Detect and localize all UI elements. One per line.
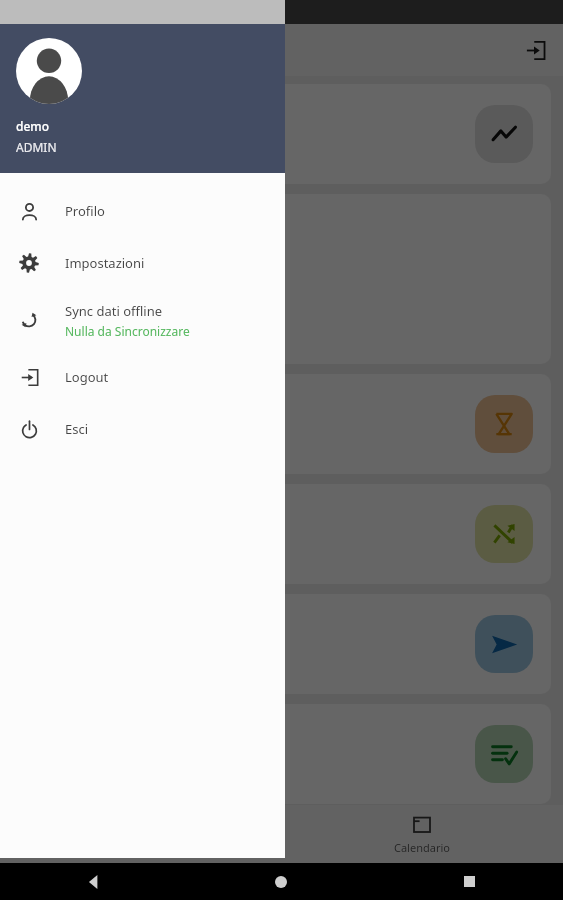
staticText: Esci: [65, 420, 89, 438]
button[interactable]: [12, 594, 551, 694]
button[interactable]: Profilo: [0, 185, 285, 237]
button[interactable]: Calendario: [281, 805, 563, 863]
button[interactable]: Sync dati offline: [0, 289, 285, 351]
staticText: ADMIN: [16, 139, 57, 155]
button[interactable]: Back: [0, 863, 187, 900]
staticText: Applicatori: [32, 288, 144, 318]
button[interactable]: Logout: [515, 30, 555, 70]
button[interactable]: Liste: [0, 805, 281, 863]
staticText: Calendario: [394, 840, 450, 855]
button[interactable]: [12, 484, 551, 584]
button[interactable]: Impostazioni: [0, 237, 285, 289]
staticText: Manager: [58, 37, 139, 63]
button[interactable]: [12, 374, 551, 474]
staticText: demo: [16, 118, 50, 134]
staticText: Logout: [65, 368, 109, 386]
button[interactable]: Recents: [375, 863, 563, 900]
button[interactable]: Home: [187, 863, 375, 900]
button[interactable]: Logout: [0, 351, 285, 403]
button[interactable]: [12, 704, 551, 804]
button[interactable]: Applicatori: [12, 194, 551, 364]
staticText: Impostazioni: [65, 254, 145, 272]
staticText: Profilo: [65, 202, 105, 220]
button[interactable]: [12, 84, 551, 184]
staticText: Nulla da Sincronizzare: [65, 323, 190, 339]
staticText: Visualizza e Gestisci: [32, 320, 152, 338]
button[interactable]: Esci: [0, 403, 285, 455]
staticText: Sync dati offline: [65, 302, 163, 320]
